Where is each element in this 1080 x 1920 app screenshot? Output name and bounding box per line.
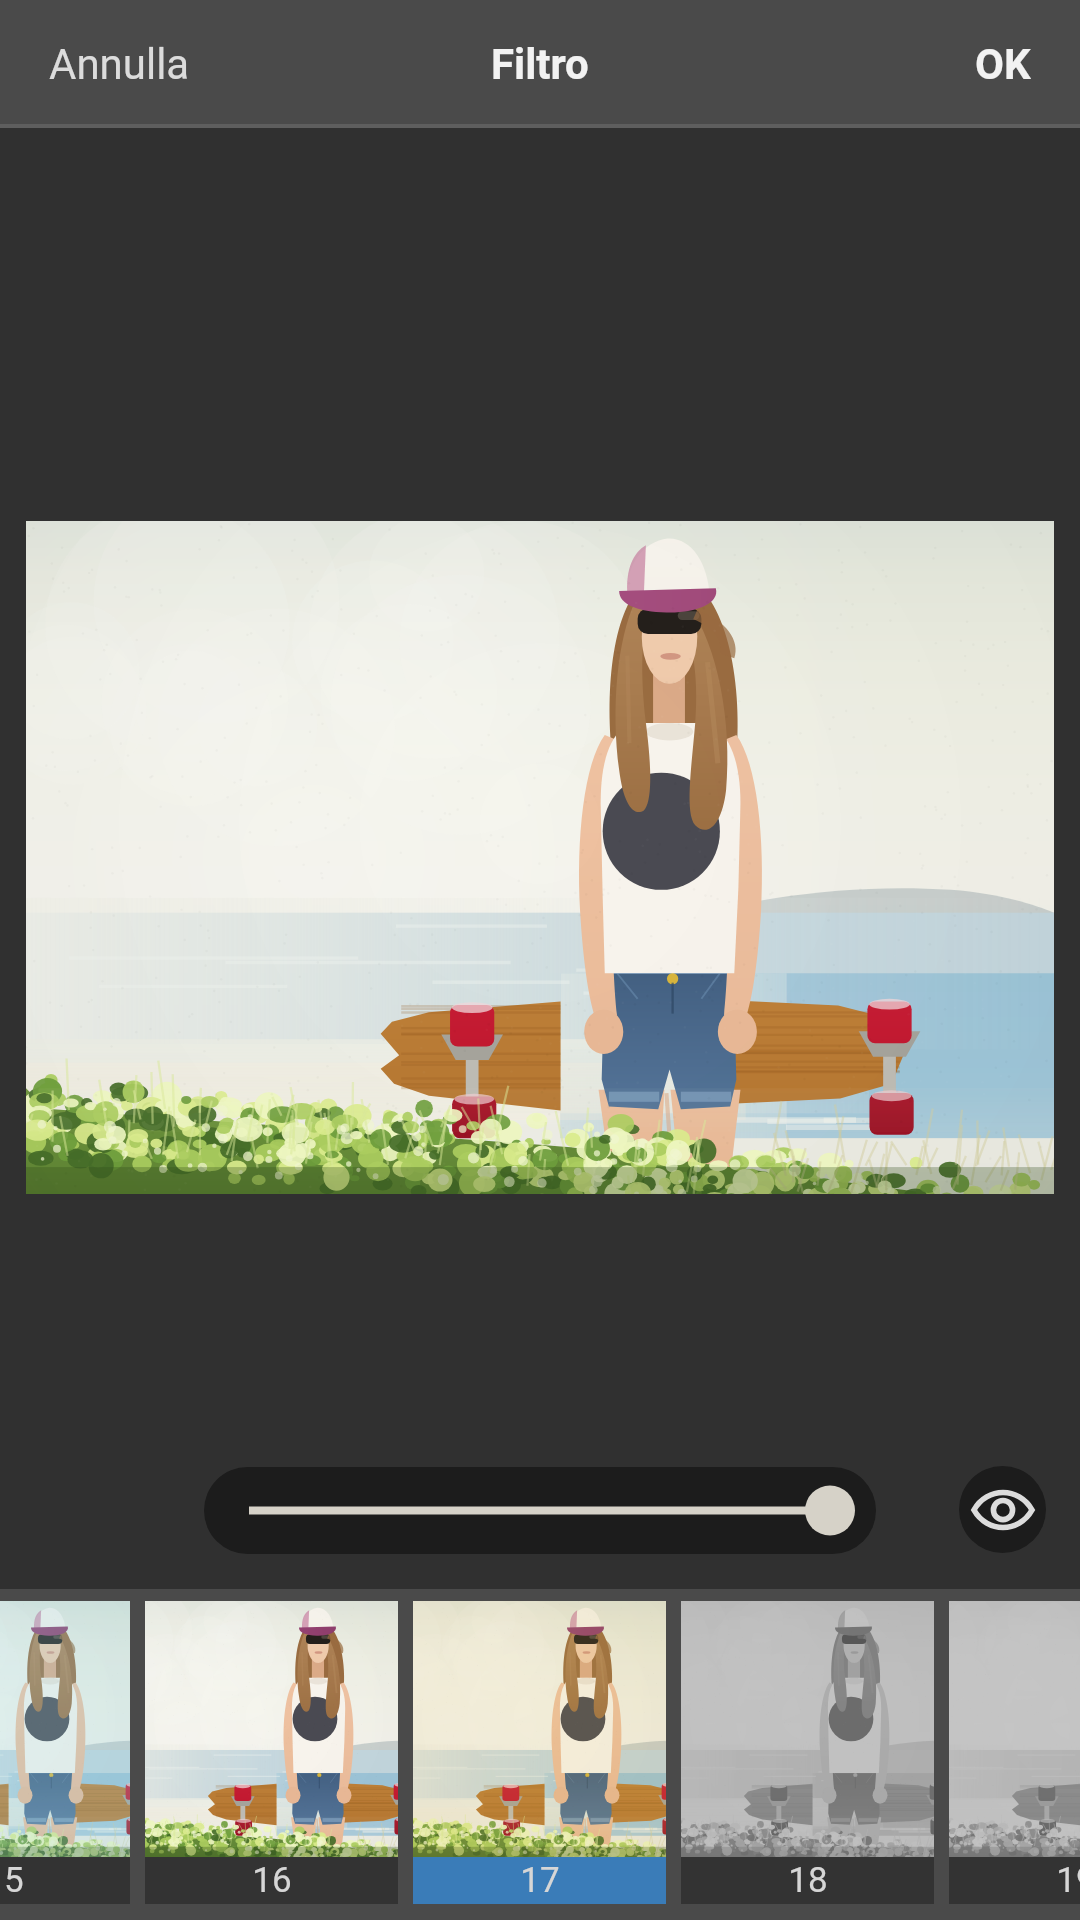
button[interactable]: Preview original [959,1466,1046,1553]
staticText: Filtro [491,40,589,89]
staticText: 15 [0,1860,24,1901]
staticText: 16 [252,1860,292,1901]
button[interactable]: 16 [145,1601,398,1904]
button[interactable]: 18 [681,1601,934,1904]
staticText: Annulla [49,40,190,89]
button[interactable]: OK [933,4,1080,124]
button[interactable]: Filter strength [204,1467,876,1554]
staticText: 19 [1056,1860,1080,1901]
button[interactable]: 15 [0,1601,130,1904]
staticText: 17 [520,1860,560,1901]
button[interactable]: 19 [949,1601,1080,1904]
button[interactable]: Annulla [0,4,232,124]
staticText: OK [975,40,1031,89]
staticText: 18 [788,1860,828,1901]
button[interactable]: 17 [413,1601,666,1904]
